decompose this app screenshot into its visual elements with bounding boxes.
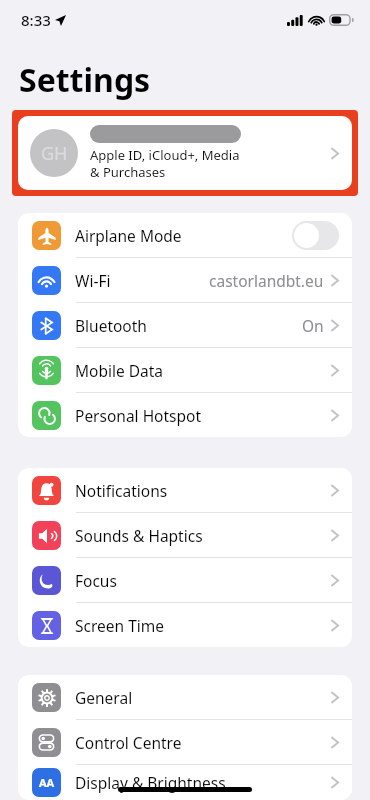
button[interactable]: Airplane Mode toggle bbox=[292, 221, 339, 250]
staticText: On bbox=[302, 315, 324, 336]
staticText: castorlandbt.eu bbox=[209, 270, 324, 291]
staticText: Screen Time bbox=[75, 615, 331, 636]
staticText: Focus bbox=[75, 570, 331, 591]
staticText: Mobile Data bbox=[75, 360, 331, 381]
button[interactable]: Bluetooth bbox=[18, 303, 352, 347]
staticText: Sounds & Haptics bbox=[75, 525, 331, 546]
button[interactable]: Mobile Data bbox=[18, 348, 352, 392]
staticText: Bluetooth bbox=[75, 315, 302, 336]
staticText: Airplane Mode bbox=[75, 225, 292, 246]
button[interactable]: Airplane Mode bbox=[18, 213, 352, 257]
staticText: Control Centre bbox=[75, 732, 331, 753]
staticText: AA bbox=[39, 775, 55, 790]
staticText: Notifications bbox=[75, 480, 331, 501]
button[interactable]: Focus bbox=[18, 558, 352, 602]
staticText: Apple ID, iCloud+, Media & Purchases bbox=[90, 146, 240, 181]
button[interactable]: Personal Hotspot bbox=[18, 393, 352, 437]
staticText: 8:33 bbox=[21, 10, 51, 30]
button[interactable]: GH bbox=[18, 116, 352, 190]
button[interactable]: General bbox=[18, 675, 352, 719]
staticText: Wi-Fi bbox=[75, 270, 209, 291]
button[interactable]: Screen Time bbox=[18, 603, 352, 647]
staticText: Personal Hotspot bbox=[75, 405, 331, 426]
staticText: Settings bbox=[19, 58, 151, 102]
button[interactable]: Control Centre bbox=[18, 720, 352, 764]
staticText: General bbox=[75, 687, 331, 708]
staticText: GH bbox=[41, 141, 68, 166]
button[interactable]: Wi-Fi bbox=[18, 258, 352, 302]
button[interactable]: Sounds & Haptics bbox=[18, 513, 352, 557]
staticText: Display & Brightness bbox=[75, 772, 331, 793]
button[interactable]: Notifications bbox=[18, 468, 352, 512]
button[interactable]: AA bbox=[18, 765, 352, 800]
